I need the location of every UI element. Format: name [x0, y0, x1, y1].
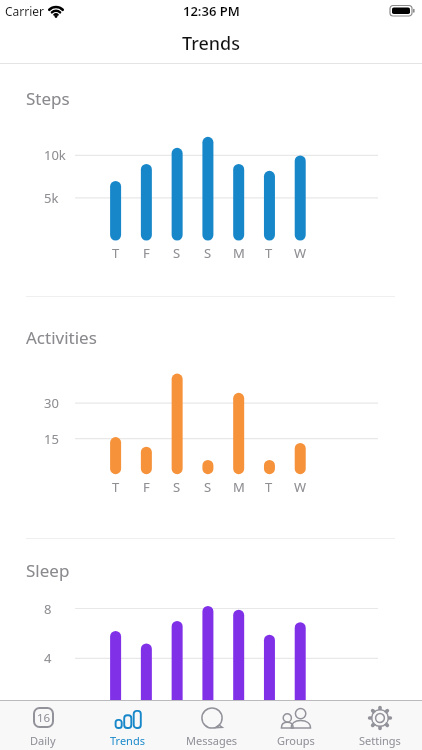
staticText: S — [173, 478, 181, 496]
staticText: 8 — [44, 600, 52, 618]
staticText: Carrier — [5, 3, 45, 19]
button[interactable]: Trends — [85, 701, 170, 750]
button[interactable]: Groups — [254, 701, 338, 750]
staticText: S — [204, 244, 212, 262]
staticText: S — [173, 244, 181, 262]
staticText: Sleep — [26, 559, 70, 582]
staticText: Settings — [359, 733, 401, 748]
staticText: 4 — [44, 649, 52, 667]
staticText: Activities — [26, 326, 97, 349]
staticText: F — [143, 478, 150, 496]
staticText: W — [294, 478, 307, 496]
staticText: Trends — [182, 31, 240, 56]
staticText: 16 — [37, 710, 51, 726]
button[interactable]: Messages — [170, 701, 254, 750]
staticText: M — [233, 244, 245, 262]
staticText: T — [112, 478, 120, 496]
staticText: T — [265, 478, 273, 496]
staticText: 5k — [44, 189, 59, 207]
staticText: T — [112, 244, 120, 262]
staticText: Daily — [30, 733, 56, 748]
staticText: M — [233, 478, 245, 496]
staticText: Steps — [26, 87, 70, 110]
staticText: F — [143, 244, 150, 262]
staticText: Messages — [186, 733, 238, 748]
button[interactable]: Settings — [338, 701, 422, 750]
staticText: Trends — [110, 733, 145, 748]
staticText: Groups — [277, 733, 315, 748]
staticText: S — [204, 478, 212, 496]
button[interactable]: 16 — [0, 701, 85, 750]
staticText: 10k — [44, 146, 66, 164]
staticText: T — [265, 244, 273, 262]
staticText: 15 — [44, 430, 59, 448]
staticText: W — [294, 244, 307, 262]
staticText: 30 — [44, 394, 59, 412]
staticText: 12:36 PM — [183, 2, 240, 20]
